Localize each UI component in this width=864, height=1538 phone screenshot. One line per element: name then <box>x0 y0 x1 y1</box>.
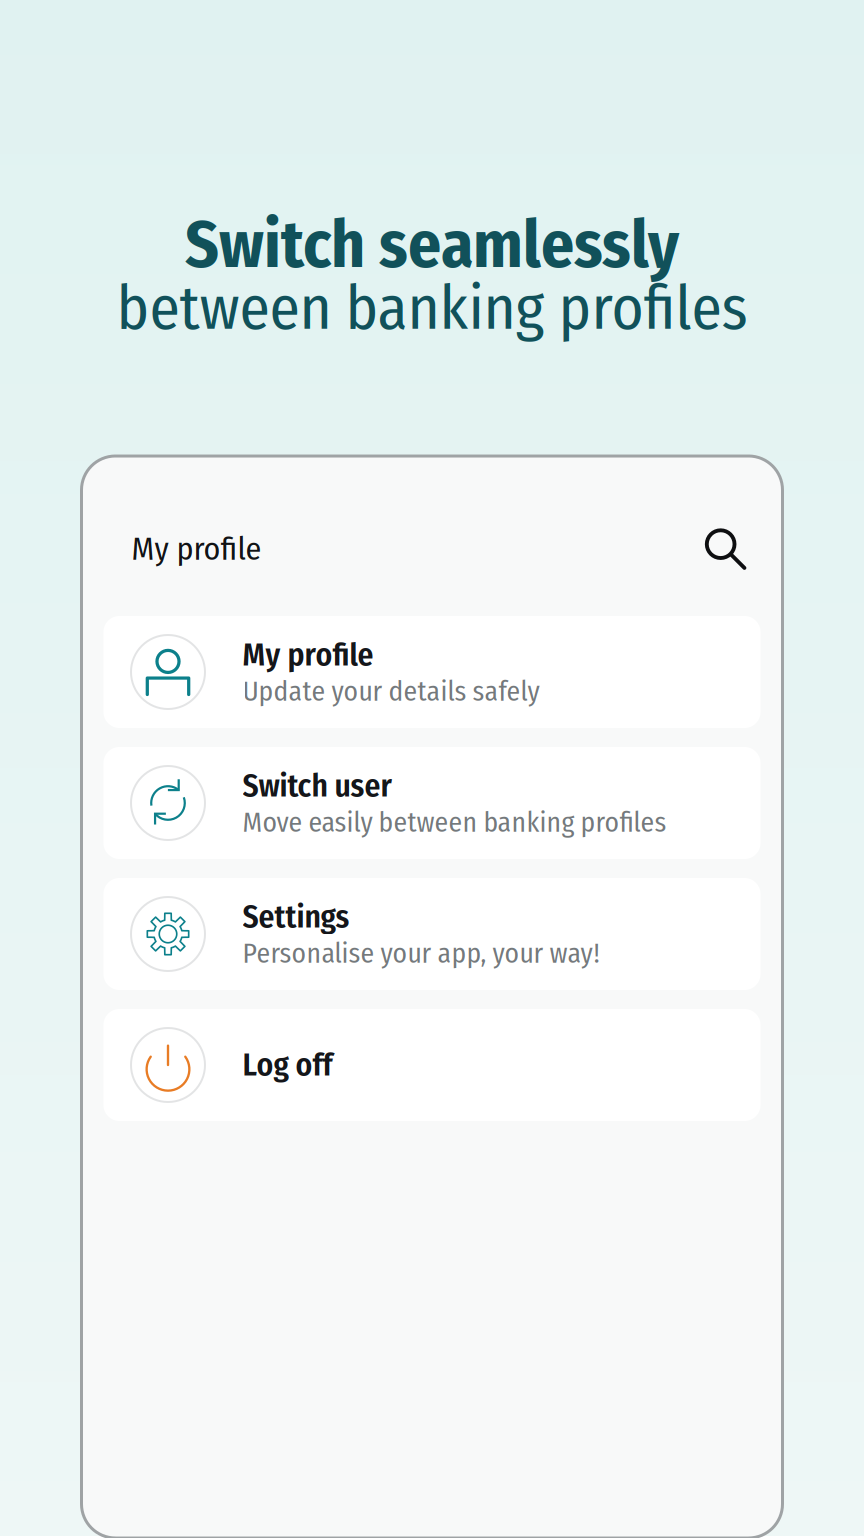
staticText: Switch user <box>242 767 391 805</box>
staticText: Personalise your app, your way! <box>242 937 599 970</box>
staticText: Log off <box>242 1046 332 1084</box>
staticText: Settings <box>242 898 349 936</box>
staticText: Update your details safely <box>242 675 539 708</box>
staticText: Switch seamlessly <box>185 206 679 284</box>
staticText: My profile <box>242 636 373 674</box>
button[interactable]: Switch user <box>103 747 760 859</box>
button[interactable]: Settings <box>103 878 760 990</box>
staticText: My profile <box>131 530 261 568</box>
button[interactable]: My profile <box>103 616 760 728</box>
staticText: Move easily between banking profiles <box>242 806 666 839</box>
button[interactable]: Search <box>696 520 754 578</box>
staticText: between banking profiles <box>116 271 747 345</box>
button[interactable]: Log off <box>103 1009 760 1121</box>
